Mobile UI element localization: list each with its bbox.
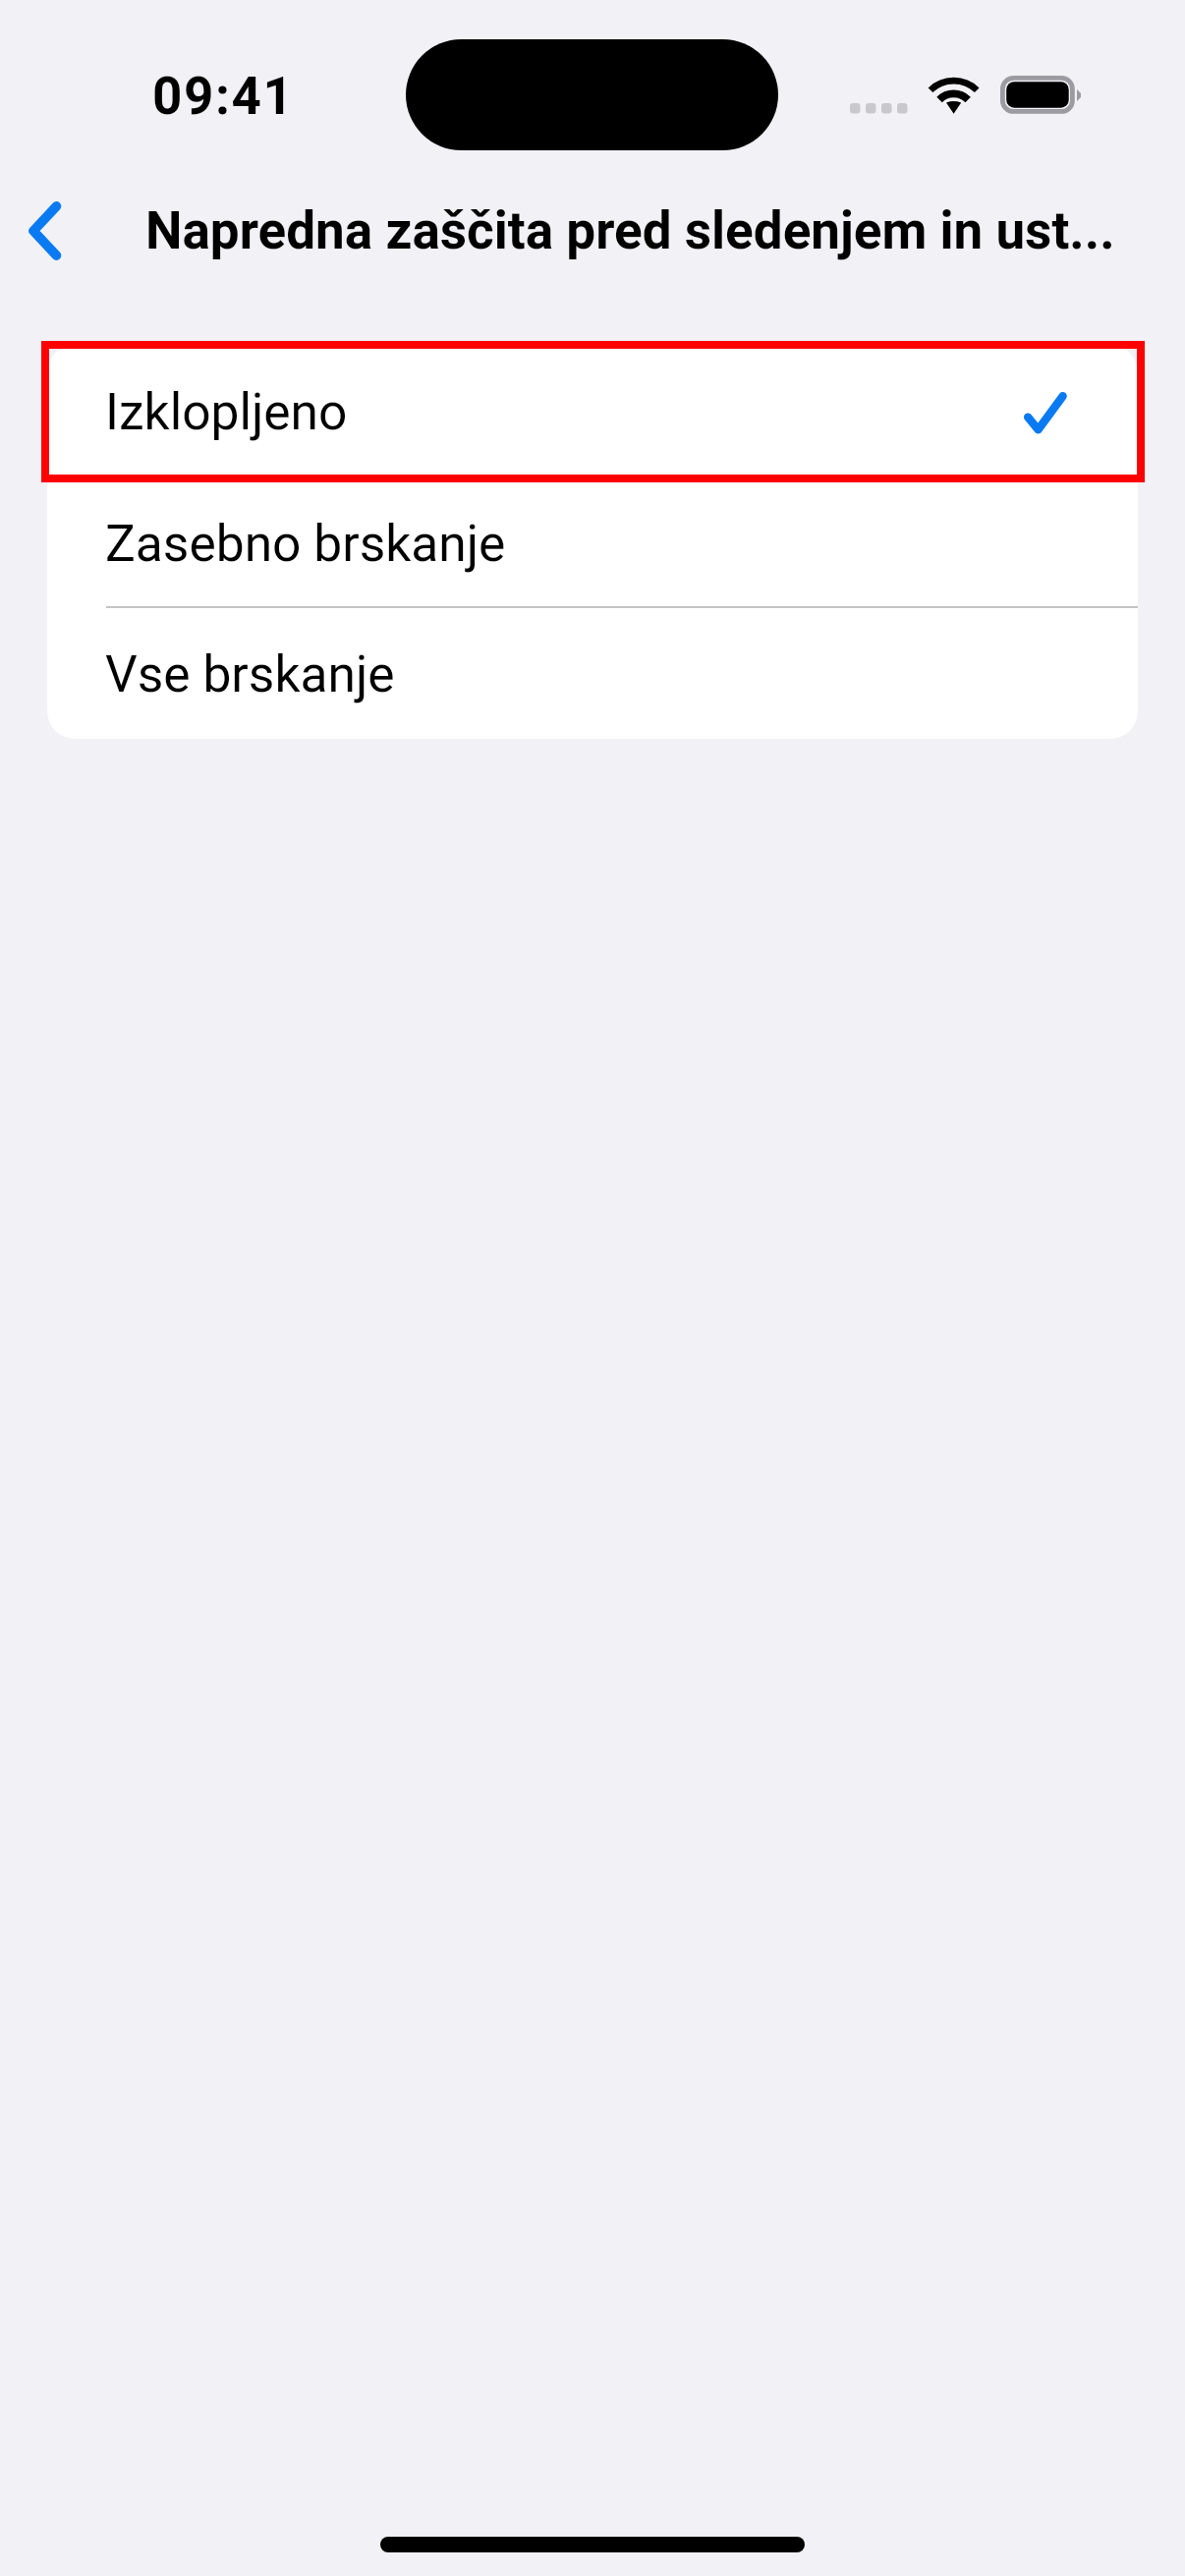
- button[interactable]: Izklopljeno: [47, 345, 1138, 478]
- staticText: Zasebno brskanje: [105, 514, 506, 573]
- staticText: Napredna zaščita pred sledenjem in ust..…: [145, 200, 1115, 261]
- button[interactable]: Back: [0, 177, 93, 285]
- button[interactable]: Vse brskanje: [47, 608, 1138, 739]
- other: Selected: [1024, 388, 1071, 435]
- staticText: Vse brskanje: [105, 644, 395, 703]
- button[interactable]: Zasebno brskanje: [47, 478, 1138, 608]
- staticText: 09:41: [152, 66, 295, 127]
- staticText: Izklopljeno: [105, 382, 348, 441]
